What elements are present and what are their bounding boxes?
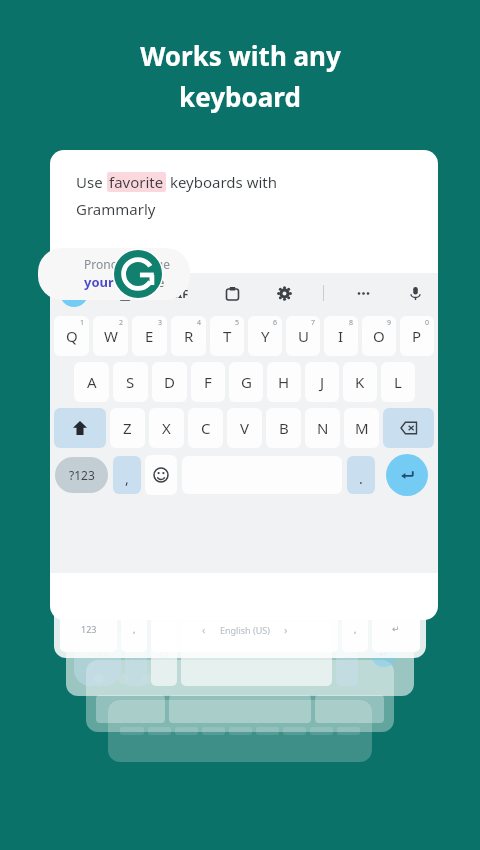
staticText: ↵	[379, 648, 389, 661]
staticText: 5	[235, 318, 240, 328]
button[interactable]: O	[362, 316, 396, 356]
staticText: 2	[119, 318, 124, 328]
staticText: favorite	[114, 273, 165, 291]
staticText: 7	[311, 318, 316, 328]
button[interactable]: Backspace	[383, 408, 434, 448]
staticText: B	[279, 418, 289, 438]
staticText: 123	[81, 623, 97, 635]
staticText: G	[241, 372, 252, 392]
button[interactable]: C	[188, 408, 223, 448]
staticText: ‹	[202, 622, 206, 637]
button[interactable]: R	[171, 316, 206, 356]
staticText: ,	[125, 469, 129, 488]
staticText: L	[394, 372, 402, 392]
button[interactable]: N	[305, 408, 340, 448]
button[interactable]: Voice input	[402, 280, 428, 306]
staticText: K	[355, 372, 365, 392]
staticText: favorite	[109, 172, 164, 192]
button[interactable]: J	[305, 362, 339, 402]
staticText: J	[320, 372, 325, 392]
button[interactable]: B	[266, 408, 301, 448]
staticText: O	[373, 326, 385, 346]
staticText: Pronoun usage	[84, 256, 170, 272]
staticText: ›	[284, 622, 288, 637]
button[interactable]: M	[344, 408, 379, 448]
staticText: keyboards with	[166, 172, 277, 192]
staticText: U	[298, 326, 309, 346]
staticText: R	[184, 326, 194, 346]
staticText: Y	[261, 326, 270, 346]
button[interactable]: Y	[248, 316, 282, 356]
button[interactable]: P	[400, 316, 434, 356]
staticText: P	[412, 326, 422, 346]
button[interactable]: G	[229, 362, 263, 402]
button[interactable]: T	[210, 316, 244, 356]
staticText: Use	[76, 172, 107, 192]
button[interactable]: .	[347, 456, 375, 494]
staticText: 0	[425, 318, 430, 328]
staticText: keyboard	[179, 79, 301, 114]
button[interactable]: I	[324, 316, 358, 356]
button[interactable]: Settings	[271, 280, 297, 306]
staticText: M	[355, 418, 369, 438]
button[interactable]: ,	[113, 456, 141, 494]
staticText: N	[317, 418, 329, 438]
staticText: S	[126, 372, 135, 392]
button[interactable]: GIF	[166, 282, 193, 305]
button[interactable]: W	[93, 316, 128, 356]
staticText: Works with any	[140, 38, 341, 73]
button[interactable]: V	[227, 408, 262, 448]
button[interactable]: F	[191, 362, 225, 402]
button[interactable]: U	[286, 316, 320, 356]
staticText: A	[87, 372, 97, 392]
staticText: 8	[349, 318, 354, 328]
button[interactable]: Z	[110, 408, 145, 448]
staticText: 6	[273, 318, 278, 328]
button[interactable]: Q	[54, 316, 89, 356]
staticText: ☺	[159, 649, 169, 659]
staticText: H	[278, 372, 290, 392]
staticText: ?123	[88, 648, 108, 660]
staticText: Q	[66, 326, 78, 346]
staticText: 9	[387, 318, 392, 328]
button[interactable]: X	[149, 408, 184, 448]
button[interactable]: H	[267, 362, 301, 402]
staticText: GIF	[170, 286, 189, 301]
button[interactable]: E	[132, 316, 167, 356]
staticText: ?123	[69, 467, 95, 483]
button[interactable]: More	[350, 280, 376, 306]
button[interactable]: K	[343, 362, 377, 402]
button[interactable]: Enter	[386, 454, 428, 496]
staticText: T	[223, 326, 232, 346]
button[interactable]: D	[152, 362, 187, 402]
button[interactable]: Stickers	[114, 280, 140, 306]
staticText: 3	[158, 318, 163, 328]
staticText: Grammarly	[76, 199, 156, 219]
staticText: F	[204, 372, 212, 392]
staticText: your	[84, 273, 114, 291]
staticText: .	[346, 648, 349, 660]
staticText: D	[164, 372, 175, 392]
staticText: 1	[80, 318, 85, 328]
button[interactable]: ?123	[55, 457, 108, 493]
staticText: 4	[197, 318, 202, 328]
staticText: .	[359, 469, 363, 488]
staticText: V	[240, 418, 250, 438]
button[interactable]: S	[113, 362, 148, 402]
button[interactable]: L	[381, 362, 415, 402]
staticText: English (US)	[220, 624, 270, 636]
staticText: ,	[135, 648, 138, 660]
button[interactable]: A	[74, 362, 109, 402]
button[interactable]: Grammarly	[112, 248, 164, 300]
staticText: C	[201, 418, 211, 438]
staticText: ↵	[392, 624, 400, 634]
button[interactable]: Back	[60, 279, 88, 307]
button[interactable]: Shift	[54, 408, 106, 448]
button[interactable]: Emoji	[145, 455, 177, 495]
staticText: Z	[123, 418, 132, 438]
staticText: ,	[354, 623, 357, 635]
staticText: I	[338, 326, 344, 346]
button[interactable]: Pronoun usage	[38, 248, 190, 300]
button[interactable]: Clipboard	[219, 280, 245, 306]
